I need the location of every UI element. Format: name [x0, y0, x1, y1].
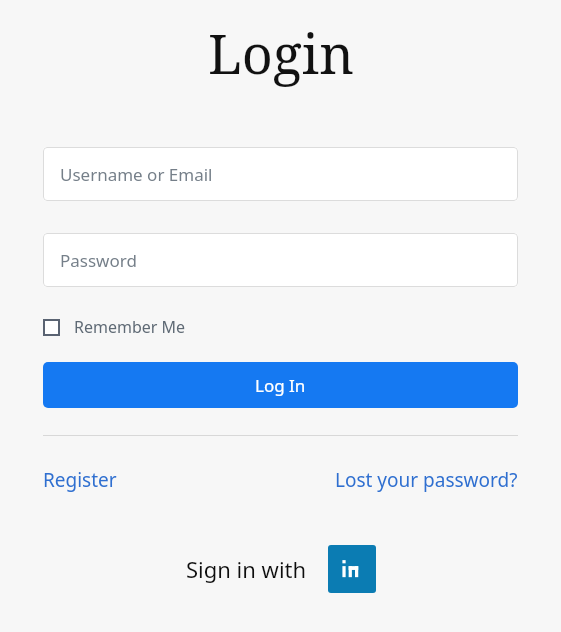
button[interactable]: Username or Email — [43, 147, 518, 201]
button[interactable]: Sign in with LinkedIn — [328, 545, 376, 593]
staticText: Login — [208, 16, 354, 90]
button[interactable]: Remember Me — [43, 314, 186, 340]
staticText: Remember Me — [74, 316, 186, 338]
button[interactable]: Lost your password? — [335, 467, 518, 493]
staticText: Sign in with — [186, 554, 307, 584]
staticText: Password — [60, 249, 137, 272]
button[interactable]: Register — [43, 467, 117, 493]
staticText: Lost your password? — [335, 467, 518, 493]
staticText: Username or Email — [60, 163, 213, 186]
button[interactable]: Log In — [43, 362, 518, 408]
button[interactable]: Password — [43, 233, 518, 287]
staticText: Register — [43, 467, 117, 493]
staticText: Log In — [255, 374, 306, 397]
